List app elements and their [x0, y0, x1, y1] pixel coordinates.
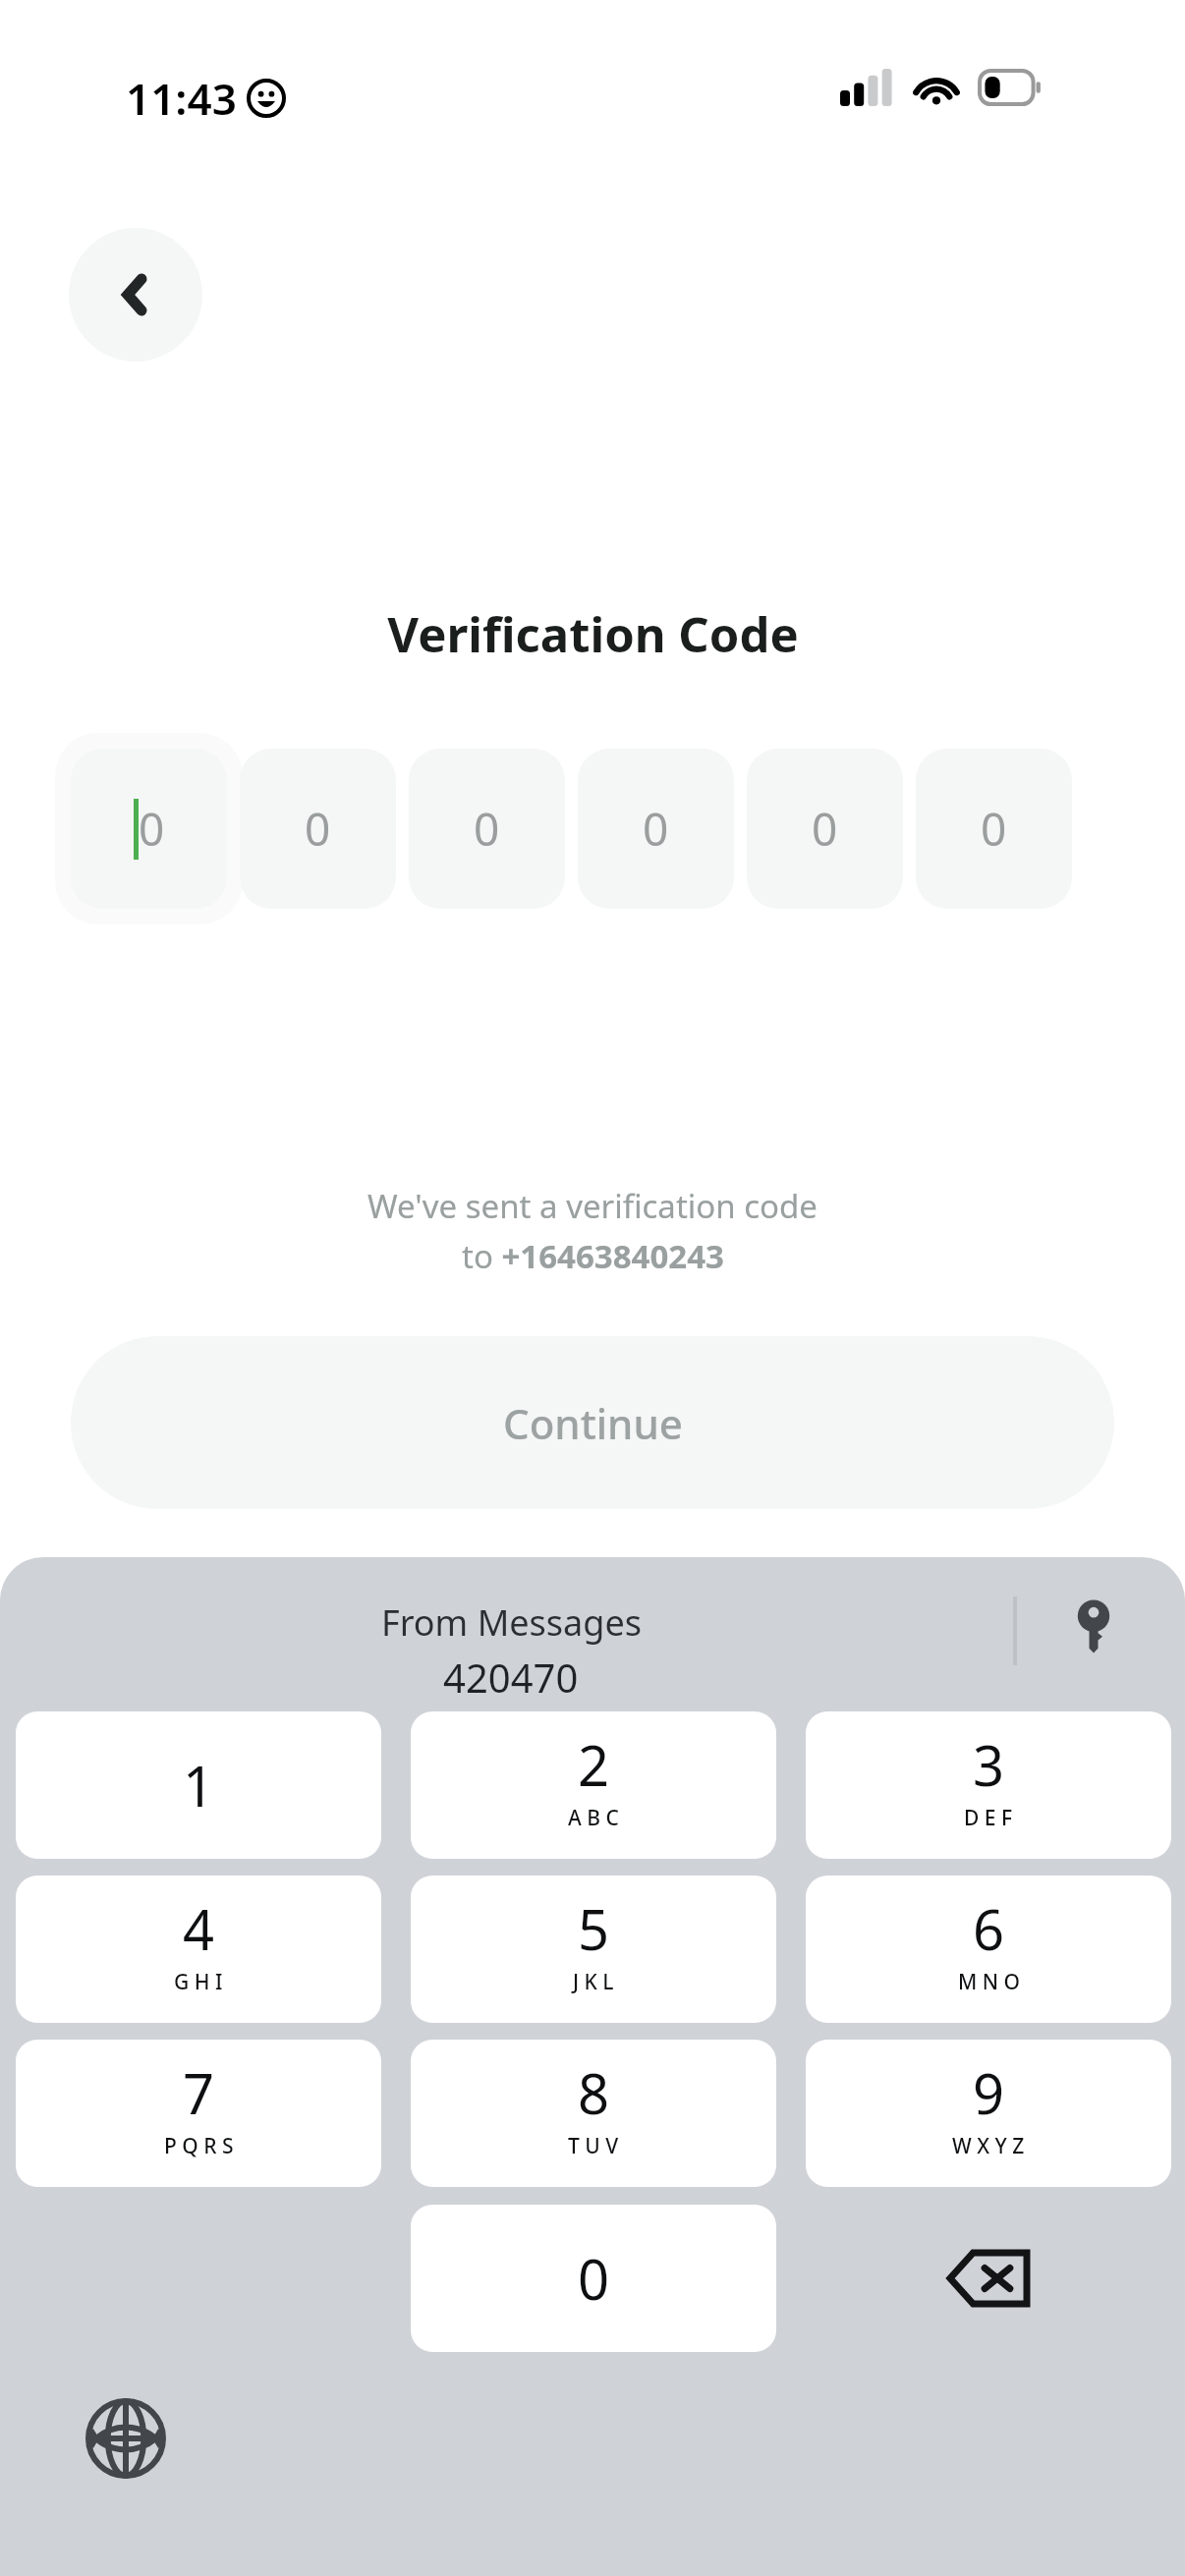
staticText: W X Y Z — [952, 2132, 1025, 2160]
staticText: 6 — [973, 1891, 1005, 1966]
staticText: 8 — [578, 2055, 610, 2130]
staticText: M N O — [958, 1968, 1020, 1996]
button[interactable]: 3 — [806, 1711, 1171, 1859]
button[interactable]: 0 — [71, 749, 227, 909]
button[interactable]: 6 — [806, 1876, 1171, 2023]
staticText: G H I — [174, 1968, 223, 1996]
button[interactable]: 8 — [411, 2040, 776, 2187]
staticText: We've sent a verification code — [367, 1184, 818, 1228]
staticText: 0 — [643, 798, 669, 860]
button[interactable]: From Messages — [0, 1598, 1022, 1704]
staticText: 0 — [578, 2241, 610, 2316]
button[interactable]: Passwords — [1054, 1587, 1133, 1665]
staticText: Verification Code — [387, 601, 799, 667]
button[interactable]: 0 — [747, 749, 903, 909]
staticText: 420470 — [443, 1651, 579, 1704]
staticText: 0 — [981, 798, 1007, 860]
button[interactable]: Back — [69, 228, 202, 362]
staticText: 3 — [973, 1727, 1005, 1802]
button[interactable]: 7 — [16, 2040, 381, 2187]
staticText: P Q R S — [164, 2132, 234, 2160]
staticText: 0 — [305, 798, 331, 860]
staticText: From Messages — [381, 1598, 642, 1647]
button[interactable]: 1 — [16, 1711, 381, 1859]
staticText: Continue — [503, 1395, 683, 1451]
staticText: 2 — [578, 1727, 610, 1802]
button[interactable]: 0 — [409, 749, 565, 909]
staticText: D E F — [964, 1804, 1013, 1832]
button[interactable]: 0 — [578, 749, 734, 909]
staticText: 7 — [183, 2055, 215, 2130]
button[interactable]: Change keyboard language — [65, 2378, 187, 2499]
button[interactable]: 9 — [806, 2040, 1171, 2187]
staticText: 11:43 — [126, 69, 237, 128]
button[interactable]: 5 — [411, 1876, 776, 2023]
button[interactable]: 0 — [240, 749, 396, 909]
button[interactable]: Backspace — [806, 2205, 1171, 2352]
staticText: 0 — [474, 798, 500, 860]
button[interactable]: 0 — [411, 2205, 776, 2352]
staticText: 0 — [812, 798, 838, 860]
staticText: 9 — [973, 2055, 1005, 2130]
staticText: 5 — [578, 1891, 610, 1966]
button[interactable]: Continue — [71, 1336, 1114, 1509]
staticText: 4 — [183, 1891, 215, 1966]
staticText: to +16463840243 — [462, 1234, 724, 1278]
button[interactable]: 4 — [16, 1876, 381, 2023]
button[interactable]: 0 — [916, 749, 1072, 909]
button[interactable]: 2 — [411, 1711, 776, 1859]
staticText: T U V — [568, 2132, 619, 2160]
staticText: 1 — [183, 1748, 215, 1822]
staticText: 0 — [139, 798, 165, 860]
staticText: A B C — [568, 1804, 619, 1832]
staticText: J K L — [573, 1968, 614, 1996]
